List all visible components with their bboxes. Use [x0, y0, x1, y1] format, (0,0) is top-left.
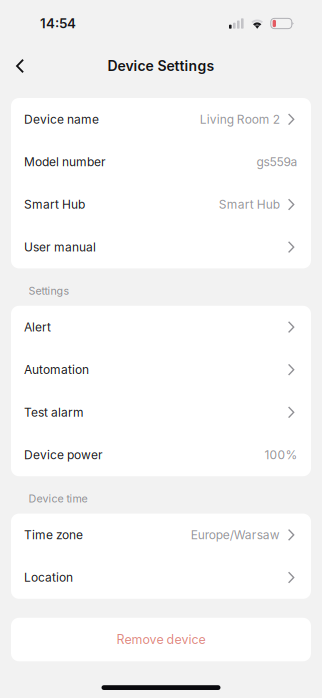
staticText: Device time [28, 492, 87, 505]
staticText: Device Settings [107, 57, 214, 74]
staticText: Time zone [24, 528, 83, 542]
staticText: Smart Hub [219, 197, 280, 212]
button[interactable]: Back [0, 47, 40, 85]
staticText: Device name [24, 112, 99, 126]
staticText: Settings [28, 284, 69, 297]
staticText: Model number [24, 155, 106, 169]
staticText: Test alarm [24, 405, 84, 419]
staticText: Alert [24, 320, 51, 334]
button[interactable]: Device name [11, 98, 311, 141]
button[interactable]: Model number [11, 141, 311, 183]
staticText: Automation [24, 362, 89, 377]
staticText: 100% [264, 448, 297, 462]
button[interactable]: Device power [11, 434, 311, 476]
button[interactable]: Automation [11, 348, 311, 391]
staticText: Remove device [116, 632, 205, 647]
staticText: Location [24, 570, 73, 585]
button[interactable]: Time zone [11, 514, 311, 556]
button[interactable]: Smart Hub [11, 183, 311, 226]
staticText: Smart Hub [24, 197, 85, 212]
staticText: User manual [24, 240, 96, 254]
button[interactable]: Alert [11, 306, 311, 348]
button[interactable]: Remove device [11, 618, 311, 661]
staticText: gs559a [256, 155, 297, 169]
button[interactable]: Location [11, 556, 311, 599]
staticText: Europe/Warsaw [191, 528, 280, 542]
staticText: Device power [24, 448, 103, 462]
staticText: Living Room 2 [200, 112, 280, 126]
staticText: 14:54 [40, 15, 76, 31]
button[interactable]: Test alarm [11, 391, 311, 434]
button[interactable]: User manual [11, 226, 311, 268]
